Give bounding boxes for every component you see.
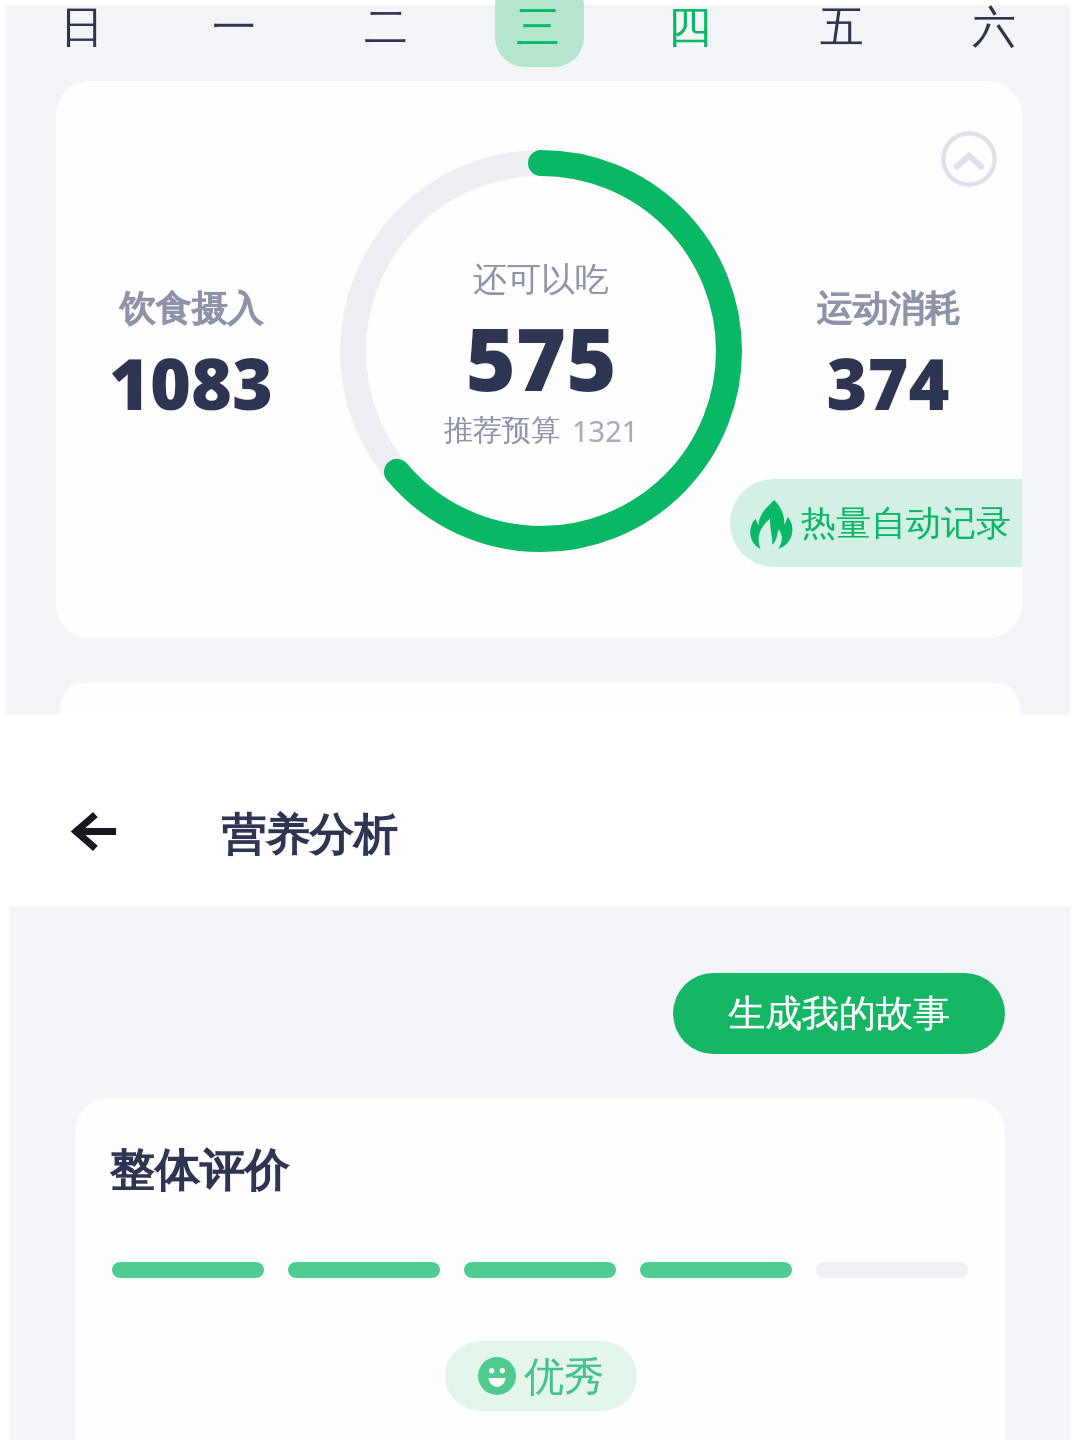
button[interactable]: 日 <box>6 5 158 80</box>
staticText: 575 <box>341 299 741 416</box>
staticText: 生成我的故事 <box>728 990 950 1037</box>
staticText: 还可以吃 <box>341 258 741 301</box>
staticText: 推荐预算 <box>444 412 560 449</box>
staticText: 六 <box>972 0 1016 55</box>
staticText: 一 <box>212 0 256 55</box>
staticText: 三 <box>516 0 560 55</box>
button[interactable]: 六 <box>918 5 1070 80</box>
staticText: 1083 <box>100 335 282 430</box>
staticText: 营养分析 <box>221 808 397 863</box>
staticText: 热量自动记录 <box>801 501 1011 545</box>
button[interactable]: Back <box>54 791 134 871</box>
button[interactable]: 四 <box>614 5 766 80</box>
button[interactable]: 优秀 <box>445 1341 637 1411</box>
button[interactable]: 三 <box>462 5 614 80</box>
staticText: 374 <box>797 335 979 430</box>
button[interactable]: Collapse <box>941 131 997 187</box>
button[interactable]: 五 <box>766 5 918 80</box>
staticText: 整体评价 <box>109 1143 289 1200</box>
staticText: 优秀 <box>524 1351 604 1401</box>
staticText: 1321 <box>572 411 639 450</box>
staticText: 四 <box>668 0 712 55</box>
button[interactable]: 生成我的故事 <box>673 973 1005 1054</box>
staticText: 日 <box>60 0 104 55</box>
staticText: 五 <box>820 0 864 55</box>
staticText: 二 <box>364 0 408 55</box>
button[interactable]: 二 <box>310 5 462 80</box>
staticText: 饮食摄入 <box>100 286 282 331</box>
button[interactable]: 热量自动记录 <box>730 479 1022 567</box>
button[interactable]: 一 <box>158 5 310 80</box>
staticText: 运动消耗 <box>797 286 979 331</box>
